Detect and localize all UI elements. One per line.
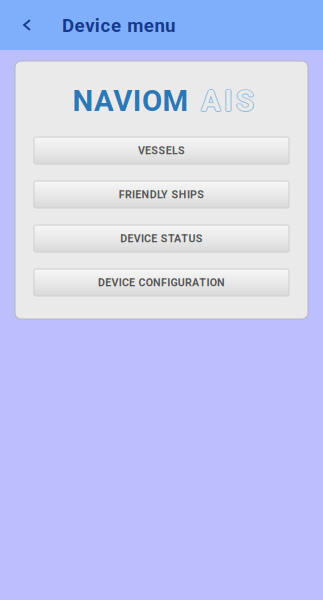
staticText: DEVICE CONFIGURATION [98, 276, 225, 289]
staticText: AIS [201, 85, 254, 119]
staticText: AIS [201, 84, 254, 118]
button[interactable]: DEVICE STATUS [34, 225, 289, 252]
button[interactable]: VESSELS [34, 137, 289, 164]
staticText: FRIENDLY SHIPS [119, 188, 204, 201]
staticText: AIS [202, 84, 255, 118]
button[interactable]: Back [0, 0, 54, 50]
staticText: VESSELS [138, 144, 185, 157]
staticText: AIS [200, 84, 253, 118]
staticText: NAVIOM [72, 84, 188, 118]
staticText: Device menu [62, 15, 175, 36]
button[interactable]: DEVICE CONFIGURATION [34, 269, 289, 296]
staticText: AIS [201, 83, 254, 117]
button[interactable]: FRIENDLY SHIPS [34, 181, 289, 208]
staticText: DEVICE STATUS [120, 232, 203, 245]
